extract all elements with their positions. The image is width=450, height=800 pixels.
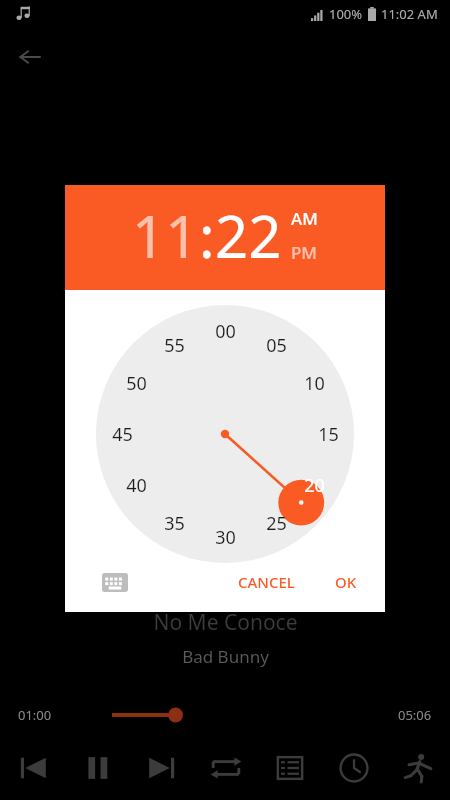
staticText: 100% — [329, 5, 363, 23]
button[interactable]: 11 — [132, 196, 199, 275]
staticText: : — [199, 196, 215, 275]
button[interactable]: Next — [130, 740, 194, 796]
staticText: 11 — [132, 196, 199, 275]
staticText: 40 — [126, 473, 147, 498]
staticText: 55 — [164, 333, 185, 358]
staticText: 30 — [215, 525, 236, 550]
staticText: 11:02 AM — [381, 5, 438, 23]
button[interactable]: Repeat — [194, 740, 258, 796]
staticText: No Me Conoce — [153, 608, 298, 637]
staticText: 05 — [266, 333, 287, 358]
button[interactable]: Previous — [0, 740, 65, 796]
button[interactable]: Walk mode — [386, 740, 450, 796]
button[interactable]: CANCEL — [226, 564, 307, 600]
button[interactable]: Minute dial — [96, 305, 354, 563]
staticText: 01:00 — [18, 706, 52, 724]
staticText: 15 — [318, 422, 339, 447]
button[interactable]: OK — [323, 564, 369, 600]
staticText: Bad Bunny — [182, 645, 269, 668]
button[interactable]: Sleep timer — [322, 740, 386, 796]
button[interactable]: AM — [291, 207, 318, 230]
button[interactable]: Back — [10, 37, 50, 77]
button[interactable]: 22 — [215, 196, 282, 275]
staticText: 35 — [164, 511, 185, 536]
staticText: 10 — [304, 371, 325, 396]
button[interactable]: PM — [291, 241, 317, 264]
button[interactable]: Pause — [65, 740, 130, 796]
staticText: OK — [335, 572, 357, 592]
staticText: AM — [291, 207, 318, 230]
button[interactable]: Switch to keyboard input — [95, 562, 135, 602]
staticText: 45 — [112, 422, 133, 447]
staticText: 25 — [266, 511, 287, 536]
staticText: 20 — [304, 473, 325, 498]
staticText: 05:06 — [398, 706, 432, 724]
staticText: CANCEL — [238, 572, 295, 592]
button[interactable] — [62, 703, 388, 727]
staticText: PM — [291, 241, 317, 264]
staticText: 00 — [215, 319, 236, 344]
staticText: 22 — [215, 196, 282, 275]
button[interactable]: Playlist — [258, 740, 322, 796]
staticText: 50 — [126, 371, 147, 396]
